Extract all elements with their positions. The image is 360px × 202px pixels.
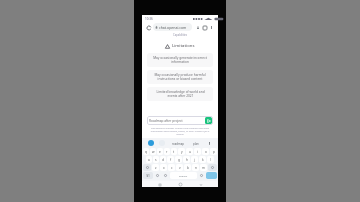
- staticText: i: [197, 150, 198, 154]
- staticText: !#1: [146, 174, 150, 178]
- button[interactable]: Downloads: [194, 24, 201, 31]
- button[interactable]: Tabs: [201, 24, 208, 31]
- button[interactable]: Keyboard settings: [148, 140, 154, 146]
- button[interactable]: o: [202, 148, 209, 155]
- button[interactable]: Home: [178, 182, 183, 187]
- staticText: Free Research Preview. ChatGPT may produ…: [147, 127, 213, 136]
- button[interactable]: w: [150, 148, 156, 155]
- button[interactable]: x: [160, 164, 167, 171]
- button[interactable]: f: [167, 156, 174, 163]
- staticText: h: [186, 158, 188, 162]
- staticText: e: [159, 150, 161, 154]
- button[interactable]: t: [171, 148, 177, 155]
- staticText: j: [194, 158, 195, 162]
- staticText: y: [181, 150, 183, 154]
- button[interactable]: h: [183, 156, 190, 163]
- staticText: b: [187, 166, 189, 170]
- button[interactable]: Backspace: [208, 164, 217, 171]
- staticText: s: [155, 158, 157, 162]
- staticText: g: [178, 158, 180, 162]
- button[interactable]: q: [143, 148, 149, 155]
- button[interactable]: !#1: [143, 172, 153, 179]
- button[interactable]: Period: [198, 172, 205, 179]
- button[interactable]: plan: [191, 141, 201, 146]
- button[interactable]: l: [207, 156, 214, 163]
- button[interactable]: u: [186, 148, 193, 155]
- button[interactable]: May occasionally generate incorrect info…: [147, 53, 213, 67]
- staticText: Limited knowledge of world and events af…: [156, 90, 205, 98]
- button[interactable]: j: [191, 156, 198, 163]
- button[interactable]: Back: [198, 182, 203, 187]
- staticText: Roadmap after project: [149, 119, 183, 123]
- staticText: Capabilities: [173, 33, 188, 37]
- staticText: n: [195, 166, 197, 170]
- staticText: x: [163, 166, 165, 170]
- button[interactable]: p: [210, 148, 217, 155]
- button[interactable]: Settings: [154, 172, 161, 179]
- button[interactable]: z: [152, 164, 159, 171]
- staticText: a: [148, 158, 150, 162]
- button[interactable]: b: [184, 164, 191, 171]
- staticText: f: [170, 158, 172, 162]
- button[interactable]: chat.openai.com: [153, 23, 192, 31]
- button[interactable]: Shift: [143, 164, 151, 171]
- button[interactable]: g: [175, 156, 182, 163]
- button[interactable]: English: [170, 172, 197, 179]
- button[interactable]: y: [178, 148, 185, 155]
- button[interactable]: Emoji: [162, 172, 169, 179]
- button[interactable]: Reload: [145, 24, 152, 31]
- staticText: l: [210, 158, 211, 162]
- staticText: z: [155, 166, 157, 170]
- button[interactable]: a: [146, 156, 152, 163]
- staticText: m: [202, 166, 205, 170]
- staticText: r: [166, 150, 168, 154]
- staticText: o: [205, 150, 207, 154]
- staticText: w: [152, 150, 155, 154]
- staticText: q: [145, 150, 147, 154]
- button[interactable]: Enter: [206, 172, 217, 179]
- button[interactable]: v: [176, 164, 183, 171]
- button[interactable]: roadmap: [170, 141, 186, 146]
- button[interactable]: Limited knowledge of world and events af…: [147, 87, 213, 101]
- staticText: k: [202, 158, 204, 162]
- staticText: May occasionally produce harmful instruc…: [154, 73, 206, 81]
- staticText: d: [162, 158, 164, 162]
- button[interactable]: m: [200, 164, 207, 171]
- staticText: plan: [193, 142, 199, 146]
- button[interactable]: Recents: [157, 182, 162, 187]
- button[interactable]: Roadmap after project: [147, 116, 213, 125]
- staticText: v: [179, 166, 181, 170]
- button[interactable]: c: [168, 164, 175, 171]
- staticText: p: [213, 150, 215, 154]
- staticText: c: [171, 166, 173, 170]
- staticText: t: [173, 150, 175, 154]
- button[interactable]: Voice input: [206, 140, 212, 146]
- button[interactable]: n: [192, 164, 199, 171]
- button[interactable]: d: [160, 156, 166, 163]
- button[interactable]: May occasionally produce harmful instruc…: [147, 70, 213, 84]
- button[interactable]: More options: [208, 24, 215, 31]
- staticText: English: [179, 174, 188, 177]
- button[interactable]: Send: [205, 117, 212, 124]
- button[interactable]: s: [153, 156, 159, 163]
- button[interactable]: r: [164, 148, 170, 155]
- staticText: May occasionally generate incorrect info…: [153, 56, 207, 64]
- staticText: u: [189, 150, 191, 154]
- button[interactable]: e: [157, 148, 163, 155]
- button[interactable]: k: [199, 156, 206, 163]
- staticText: roadmap: [172, 142, 184, 146]
- staticText: Limitations: [172, 43, 195, 49]
- button[interactable]: i: [194, 148, 201, 155]
- staticText: chat.openai.com: [159, 25, 187, 30]
- staticText: 10:36: [145, 17, 153, 21]
